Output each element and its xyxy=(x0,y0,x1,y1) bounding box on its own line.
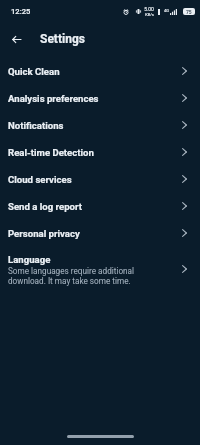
staticText: Notifications xyxy=(8,120,64,131)
button[interactable]: Analysis preferences xyxy=(0,84,200,111)
staticText: Some languages require additional downlo… xyxy=(8,266,152,286)
button[interactable]: Back xyxy=(4,27,28,51)
staticText: Quick Clean xyxy=(8,66,60,77)
button[interactable]: Language xyxy=(0,246,200,292)
button[interactable]: Send a log report xyxy=(0,192,200,219)
staticText: 12:25 xyxy=(11,7,31,16)
staticText: Language xyxy=(8,254,51,265)
button[interactable]: Quick Clean xyxy=(0,57,200,84)
staticText: Send a log report xyxy=(8,201,83,212)
staticText: 75 xyxy=(186,9,192,15)
staticText: Cloud services xyxy=(8,174,72,185)
staticText: 4G xyxy=(164,8,169,13)
button[interactable]: Cloud services xyxy=(0,165,200,192)
staticText: Analysis preferences xyxy=(8,93,99,104)
button[interactable]: Real-time Detection xyxy=(0,138,200,165)
staticText: Settings xyxy=(40,32,85,46)
staticText: 5.00 xyxy=(144,6,154,12)
staticText: KB/s xyxy=(145,12,154,17)
button[interactable]: Personal privacy xyxy=(0,219,200,246)
button[interactable]: Notifications xyxy=(0,111,200,138)
staticText: Personal privacy xyxy=(8,228,80,239)
staticText: Real-time Detection xyxy=(8,147,94,158)
